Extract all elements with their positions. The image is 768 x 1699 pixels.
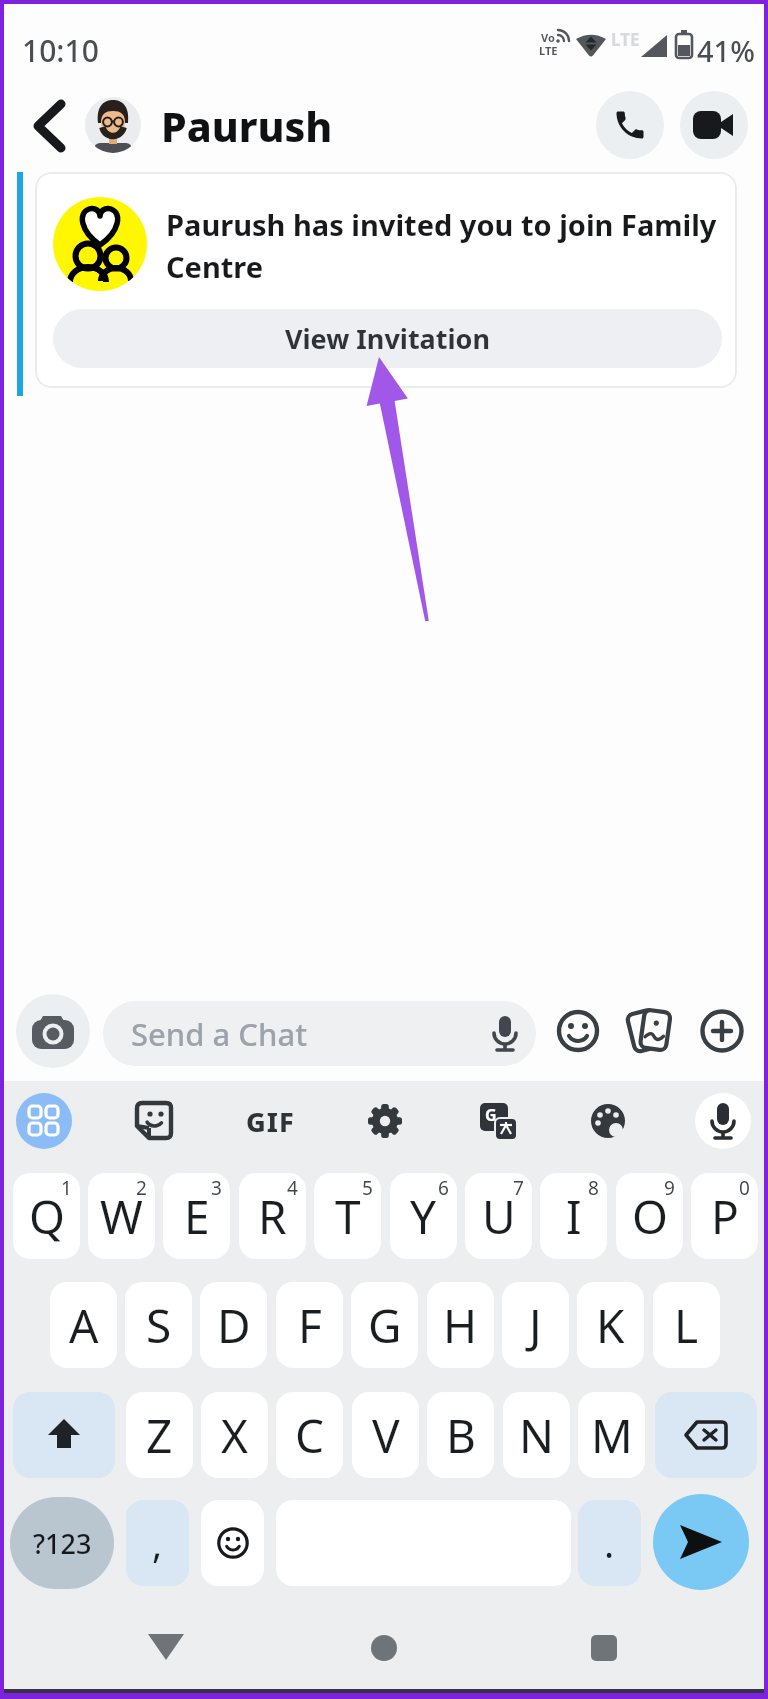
staticText: LTE bbox=[611, 28, 640, 51]
button[interactable]: I bbox=[540, 1173, 607, 1259]
staticText: V bbox=[372, 1404, 400, 1467]
button[interactable] bbox=[358, 1626, 410, 1670]
staticText: , bbox=[152, 1517, 163, 1569]
staticText: 4 bbox=[287, 1175, 298, 1201]
button[interactable] bbox=[365, 1101, 405, 1141]
staticText: LTE bbox=[539, 43, 558, 58]
button[interactable] bbox=[13, 1392, 115, 1478]
button[interactable]: K bbox=[577, 1282, 644, 1368]
staticText: X bbox=[221, 1404, 248, 1467]
staticText: B bbox=[446, 1404, 476, 1467]
button[interactable] bbox=[655, 1392, 757, 1478]
staticText: Z bbox=[146, 1404, 173, 1467]
staticText: E bbox=[184, 1185, 210, 1248]
button[interactable] bbox=[85, 97, 141, 153]
button[interactable]: F bbox=[276, 1282, 343, 1368]
button[interactable] bbox=[700, 1009, 745, 1054]
staticText: 0 bbox=[739, 1175, 750, 1201]
button[interactable]: N bbox=[503, 1392, 570, 1478]
button[interactable]: Z bbox=[126, 1392, 193, 1478]
staticText: 10:10 bbox=[22, 30, 99, 71]
staticText: GIF bbox=[246, 1103, 295, 1140]
button[interactable] bbox=[578, 1626, 630, 1670]
staticText: Paurush has invited you to join Family C… bbox=[166, 205, 717, 286]
staticText: 6 bbox=[438, 1175, 449, 1201]
staticText: . bbox=[604, 1517, 615, 1569]
button[interactable]: . bbox=[578, 1500, 641, 1586]
staticText: C bbox=[295, 1404, 325, 1467]
staticText: J bbox=[529, 1294, 542, 1357]
button[interactable] bbox=[625, 1006, 675, 1056]
staticText: U bbox=[482, 1185, 516, 1248]
staticText: 5 bbox=[362, 1175, 373, 1201]
button[interactable] bbox=[16, 994, 90, 1068]
staticText: 8 bbox=[588, 1175, 599, 1201]
button[interactable]: G bbox=[478, 1101, 520, 1143]
staticText: F bbox=[298, 1294, 322, 1357]
button[interactable]: X bbox=[201, 1392, 268, 1478]
button[interactable] bbox=[24, 98, 76, 154]
button[interactable]: S bbox=[125, 1282, 192, 1368]
button[interactable]: H bbox=[427, 1282, 494, 1368]
button[interactable]: D bbox=[200, 1282, 267, 1368]
staticText: A bbox=[69, 1294, 99, 1357]
button[interactable]: View Invitation bbox=[53, 309, 722, 368]
button[interactable] bbox=[201, 1500, 264, 1586]
button[interactable]: O bbox=[616, 1173, 683, 1259]
staticText: N bbox=[519, 1404, 554, 1467]
staticText: 7 bbox=[513, 1175, 524, 1201]
button[interactable]: R bbox=[239, 1173, 306, 1259]
staticText: W bbox=[100, 1185, 143, 1248]
button[interactable] bbox=[556, 1009, 601, 1054]
button[interactable]: W bbox=[88, 1173, 155, 1259]
button[interactable]: E bbox=[163, 1173, 230, 1259]
button[interactable] bbox=[587, 1100, 629, 1142]
button[interactable]: M bbox=[578, 1392, 645, 1478]
staticText: Vo bbox=[541, 30, 555, 45]
button[interactable]: Y bbox=[390, 1173, 457, 1259]
staticText: T bbox=[335, 1185, 361, 1248]
button[interactable]: ?123 bbox=[10, 1497, 114, 1589]
button[interactable]: J bbox=[502, 1282, 569, 1368]
button[interactable]: V bbox=[352, 1392, 419, 1478]
button[interactable] bbox=[140, 1626, 192, 1670]
staticText: D bbox=[217, 1294, 251, 1357]
button[interactable]: T bbox=[314, 1173, 381, 1259]
button[interactable]: GIF bbox=[238, 1100, 302, 1142]
button[interactable]: U bbox=[465, 1173, 532, 1259]
staticText: 2 bbox=[136, 1175, 147, 1201]
staticText: 9 bbox=[664, 1175, 675, 1201]
button[interactable]: G bbox=[351, 1282, 418, 1368]
staticText: Send a Chat bbox=[131, 1013, 308, 1055]
button[interactable]: B bbox=[427, 1392, 494, 1478]
staticText: H bbox=[443, 1294, 478, 1357]
staticText: L bbox=[674, 1294, 699, 1357]
button[interactable]: Send a Chat bbox=[103, 1001, 536, 1066]
button[interactable]: , bbox=[126, 1500, 189, 1586]
staticText: G bbox=[368, 1294, 402, 1357]
button[interactable]: C bbox=[276, 1392, 343, 1478]
staticText: Y bbox=[410, 1185, 437, 1248]
button[interactable] bbox=[596, 91, 664, 159]
button[interactable] bbox=[680, 91, 748, 159]
staticText: 41% bbox=[697, 31, 755, 70]
button[interactable]: A bbox=[50, 1282, 117, 1368]
staticText: Q bbox=[29, 1185, 65, 1248]
staticText: 1 bbox=[61, 1175, 72, 1201]
staticText: G bbox=[485, 1104, 497, 1126]
staticText: M bbox=[591, 1404, 633, 1467]
button[interactable]: P bbox=[691, 1173, 758, 1259]
button[interactable] bbox=[133, 1100, 175, 1142]
button[interactable] bbox=[695, 1093, 751, 1149]
staticText: Paurush bbox=[161, 98, 333, 154]
staticText: P bbox=[711, 1185, 739, 1248]
button[interactable]: L bbox=[653, 1282, 720, 1368]
staticText: I bbox=[566, 1185, 582, 1248]
staticText: 3 bbox=[211, 1175, 222, 1201]
button[interactable]: Q bbox=[13, 1173, 80, 1259]
button[interactable] bbox=[653, 1494, 749, 1590]
staticText: R bbox=[258, 1185, 287, 1248]
button[interactable] bbox=[16, 1093, 72, 1149]
staticText: View Invitation bbox=[285, 320, 490, 357]
